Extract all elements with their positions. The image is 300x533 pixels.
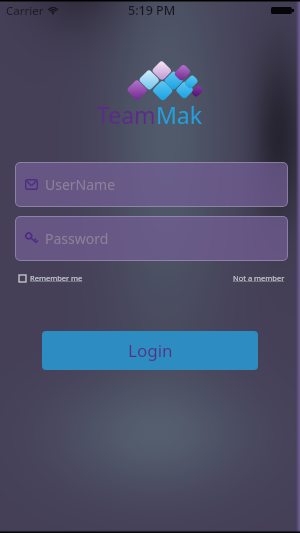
staticText: Mak xyxy=(156,99,203,130)
staticText: Team xyxy=(97,99,156,130)
button[interactable]: Password xyxy=(15,216,288,261)
staticText: Carrier xyxy=(6,3,44,19)
staticText: UserName xyxy=(45,175,116,194)
button[interactable]: Remember me xyxy=(19,271,83,285)
staticText: 5:19 PM xyxy=(128,2,176,19)
button[interactable]: UserName xyxy=(15,162,288,207)
button[interactable]: Login xyxy=(42,331,258,370)
staticText: Remember me xyxy=(30,273,83,283)
button[interactable]: Not a member xyxy=(233,271,285,285)
staticText: Login xyxy=(128,339,173,362)
staticText: Password xyxy=(45,229,109,248)
